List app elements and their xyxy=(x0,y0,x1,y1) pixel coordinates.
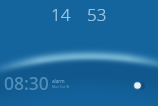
staticText: 08:30 xyxy=(4,71,49,95)
staticText: 53 xyxy=(87,3,107,26)
button[interactable]: 08:30 xyxy=(4,71,69,95)
staticText: alarm xyxy=(52,78,65,84)
button[interactable]: Alarm toggle xyxy=(131,79,144,92)
staticText: Mon Tue Wed Thu Fri xyxy=(52,84,59,86)
staticText: 14 xyxy=(51,3,71,26)
